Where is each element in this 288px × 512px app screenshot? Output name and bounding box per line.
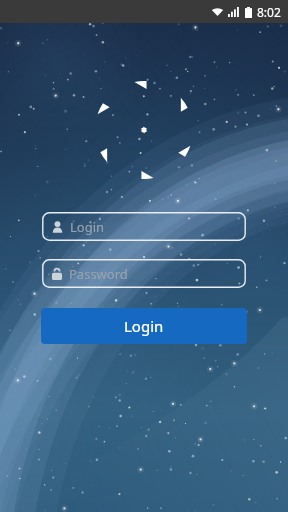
other: App logo bbox=[95, 81, 193, 179]
button[interactable]: Login bbox=[41, 308, 247, 344]
staticText: Login bbox=[70, 218, 105, 236]
button[interactable]: Login bbox=[41, 211, 247, 242]
staticText: Password bbox=[69, 265, 128, 283]
staticText: 8:02 bbox=[257, 4, 281, 20]
staticText: Login bbox=[124, 316, 164, 336]
button[interactable]: Password bbox=[41, 258, 247, 289]
